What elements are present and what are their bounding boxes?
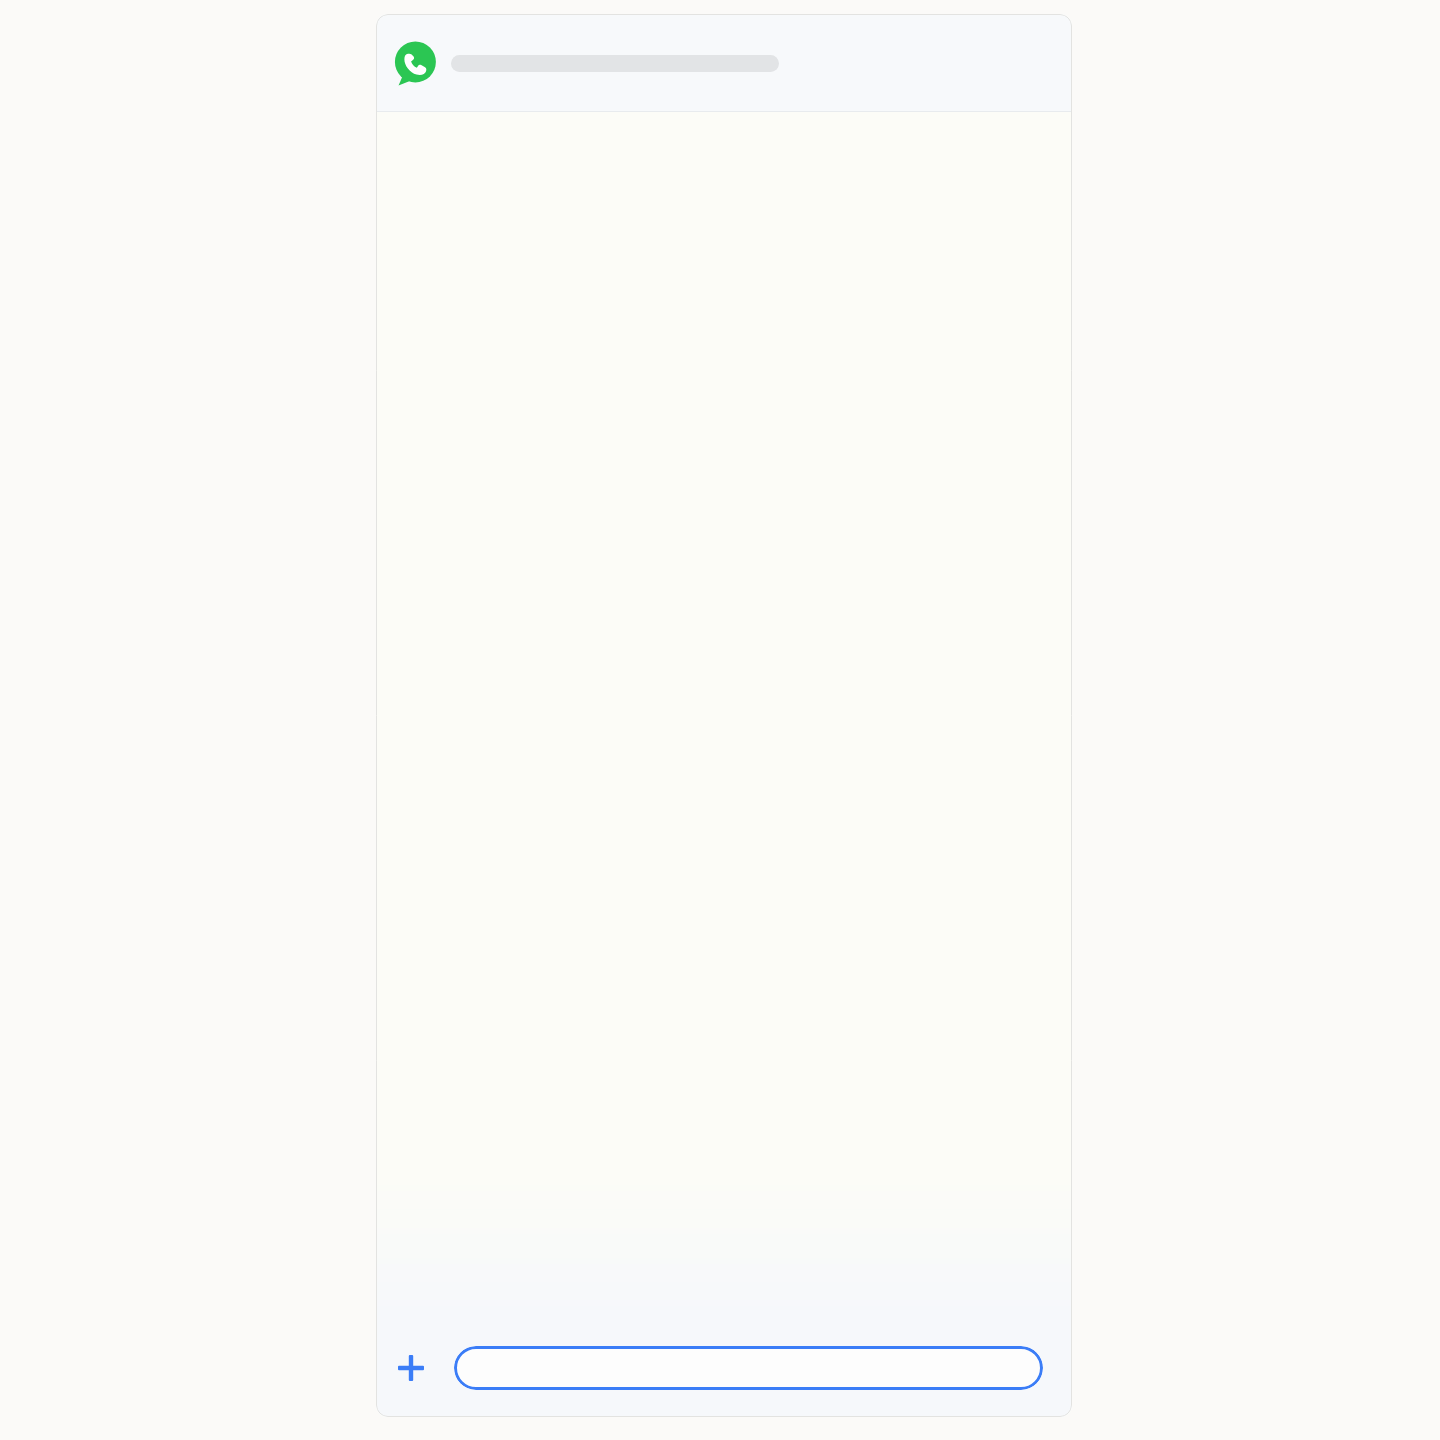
button[interactable]: Add attachment — [389, 1346, 433, 1390]
button[interactable]: WhatsApp — [392, 41, 437, 86]
button[interactable]: Message input — [454, 1346, 1043, 1390]
button[interactable]: WhatsApp — [376, 14, 1072, 112]
